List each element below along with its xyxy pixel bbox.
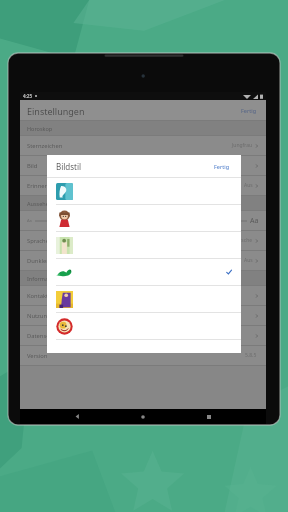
staticText: Deutsche <box>230 237 253 244</box>
button[interactable]: Recent apps <box>200 409 218 424</box>
staticText: Sprache <box>27 237 49 245</box>
staticText: Aa <box>250 216 259 226</box>
button[interactable] <box>47 286 241 312</box>
staticText: Aa <box>27 218 32 223</box>
staticText: Dunkler Modus <box>27 257 69 265</box>
staticText: Jungfrau <box>232 142 253 149</box>
button[interactable]: Nutzungsbedingungen <box>20 306 266 325</box>
staticText: Datenschutz <box>27 332 61 340</box>
staticText: Kontaktieren <box>27 292 63 300</box>
button[interactable]: Dunkler Modus <box>20 251 266 270</box>
button[interactable]: Datenschutz <box>20 326 266 345</box>
button[interactable]: Sternzeichen <box>20 136 266 155</box>
staticText: 4:25 <box>23 93 32 99</box>
button[interactable] <box>47 205 241 231</box>
button[interactable] <box>47 313 241 339</box>
staticText: Erinnerung <box>27 182 58 190</box>
button[interactable]: Home <box>134 409 152 424</box>
staticText: Bildstil <box>56 161 82 172</box>
staticText: Version <box>27 352 48 360</box>
button[interactable]: Kontaktieren <box>20 286 266 305</box>
staticText: Horoskop <box>27 125 53 132</box>
button[interactable]: Back <box>68 409 86 424</box>
button[interactable] <box>47 232 241 258</box>
button[interactable]: Sprache <box>20 231 266 250</box>
staticText: 5.8.5 <box>245 352 257 359</box>
staticText: Einstellungen <box>27 105 85 117</box>
staticText: Nutzungsbedingungen <box>27 312 90 320</box>
button[interactable] <box>47 178 241 204</box>
staticText: Aus <box>244 257 253 264</box>
staticText: Informationen <box>27 275 65 282</box>
button[interactable]: Bild <box>20 156 266 175</box>
button[interactable]: Fertig <box>239 105 259 116</box>
staticText: Aussehen <box>27 200 53 207</box>
staticText: Sternzeichen <box>27 142 63 150</box>
staticText: Fertig <box>241 107 257 114</box>
button[interactable] <box>47 259 241 285</box>
button[interactable]: Fertig <box>212 161 232 172</box>
button[interactable]: Version <box>20 346 266 365</box>
staticText: Bild <box>27 162 38 170</box>
button[interactable]: Erinnerung <box>20 176 266 195</box>
staticText: Fertig <box>214 163 230 170</box>
staticText: Aus <box>244 182 253 189</box>
